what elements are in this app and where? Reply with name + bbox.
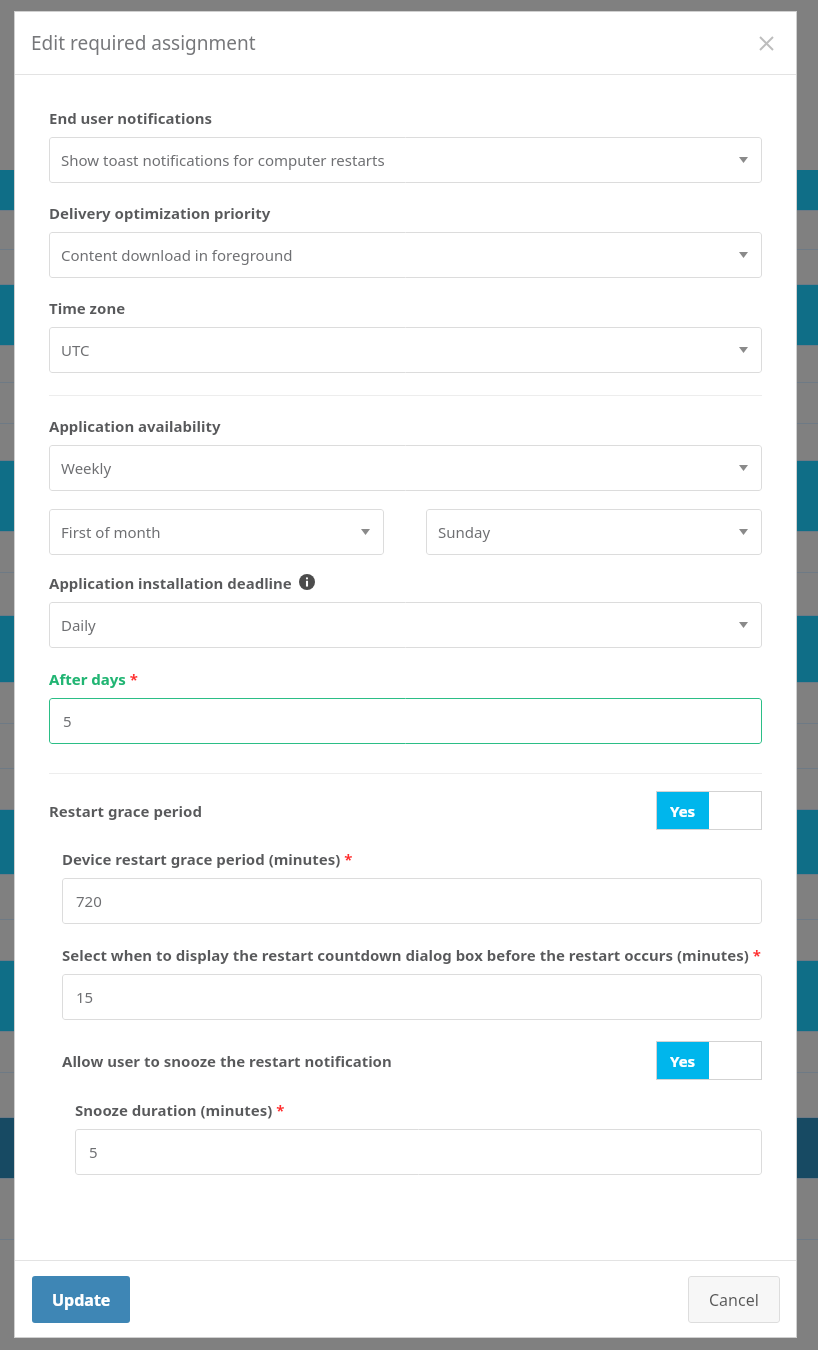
button[interactable]: Sunday	[426, 509, 762, 555]
staticText: Content download in foreground	[61, 245, 293, 265]
staticText: 15	[76, 987, 94, 1007]
staticText: First of month	[61, 522, 161, 542]
button[interactable]: Daily	[49, 602, 762, 648]
staticText: Show toast notifications for computer re…	[61, 150, 385, 170]
button[interactable]: Close	[753, 30, 779, 56]
button[interactable]: First of month	[49, 509, 384, 555]
staticText: UTC	[61, 340, 90, 360]
staticText: Snooze duration (minutes) *	[75, 1100, 285, 1120]
staticText: Edit required assignment	[31, 30, 256, 56]
button[interactable]: 5	[75, 1129, 762, 1175]
staticText: End user notifications	[49, 108, 213, 128]
staticText: After days *	[49, 669, 138, 689]
button[interactable]: UTC	[49, 327, 762, 373]
button[interactable]: 720	[62, 878, 762, 924]
staticText: 720	[76, 891, 102, 911]
staticText: Select when to display the restart count…	[62, 945, 761, 965]
staticText: Weekly	[61, 458, 112, 478]
button[interactable]: Toggle Yes	[656, 1041, 762, 1080]
staticText: Allow user to snooze the restart notific…	[62, 1051, 392, 1071]
staticText: Sunday	[438, 522, 491, 542]
staticText: Daily	[61, 615, 96, 635]
staticText: 5	[63, 711, 72, 731]
staticText: Update	[52, 1289, 111, 1311]
button[interactable]: Update	[32, 1276, 130, 1323]
staticText: Yes	[670, 801, 696, 821]
staticText: Application availability	[49, 416, 221, 436]
button[interactable]: 5	[49, 698, 762, 744]
staticText: 5	[89, 1142, 98, 1162]
button[interactable]: Weekly	[49, 445, 762, 491]
staticText: Delivery optimization priority	[49, 203, 271, 223]
staticText: Device restart grace period (minutes) *	[62, 849, 353, 869]
button[interactable]: Toggle Yes	[656, 791, 762, 830]
other: More info	[299, 574, 315, 590]
staticText: Yes	[670, 1051, 696, 1071]
staticText: Restart grace period	[49, 801, 202, 821]
button[interactable]: Content download in foreground	[49, 232, 762, 278]
button[interactable]: 15	[62, 974, 762, 1020]
staticText: Application installation deadline	[49, 573, 292, 593]
staticText: Cancel	[709, 1289, 759, 1311]
button[interactable]: Cancel	[688, 1276, 780, 1323]
staticText: Time zone	[49, 298, 126, 318]
button[interactable]: Show toast notifications for computer re…	[49, 137, 762, 183]
